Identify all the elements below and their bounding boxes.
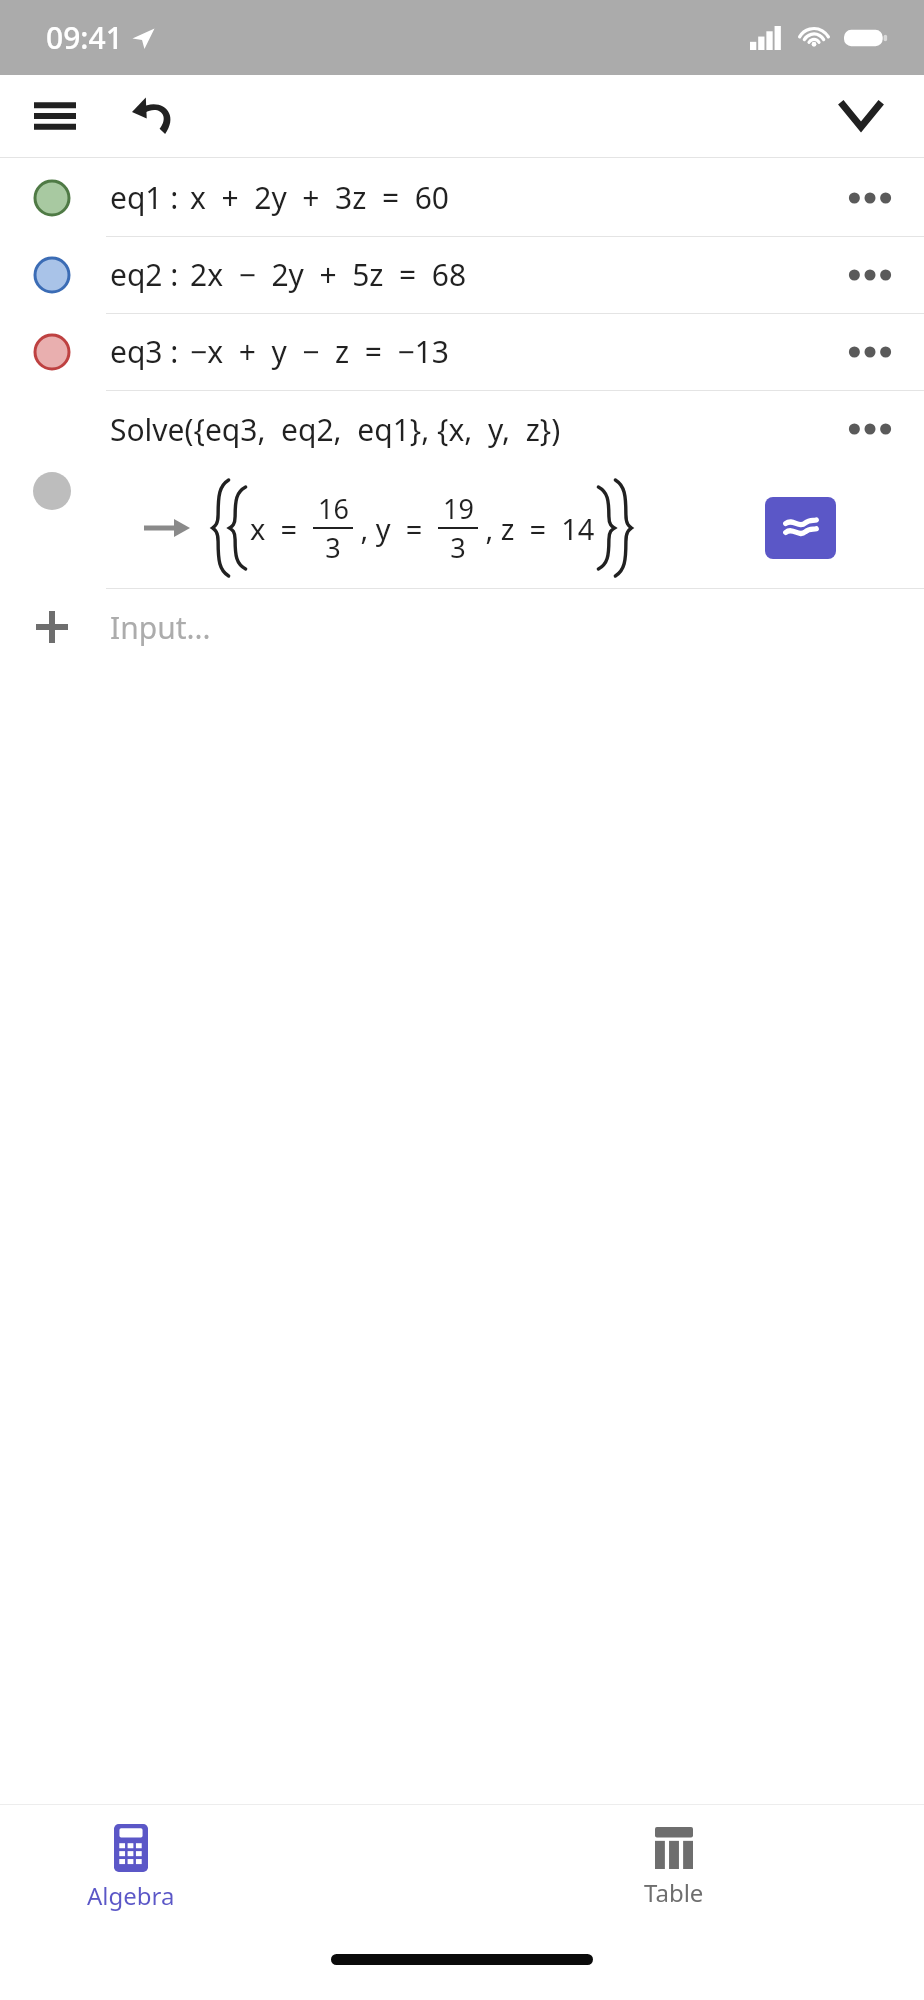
staticText: eq1 : bbox=[110, 177, 179, 218]
staticText: Solve({eq3, eq2, eq1}, {x, y, z}) bbox=[110, 409, 561, 450]
staticText: Algebra bbox=[87, 1879, 175, 1912]
button[interactable]: More options bbox=[842, 247, 898, 303]
button[interactable]: Approximate bbox=[765, 497, 836, 559]
button[interactable]: Table bbox=[644, 1827, 704, 1909]
staticText: eq2 : bbox=[110, 254, 179, 295]
button[interactable]: More options bbox=[842, 170, 898, 226]
button[interactable]: x = bbox=[0, 468, 924, 588]
staticText: 3 bbox=[450, 529, 466, 566]
button[interactable]: Algebra bbox=[87, 1824, 175, 1912]
button[interactable]: eq2 : bbox=[0, 236, 924, 313]
button[interactable]: Add input bbox=[0, 588, 924, 666]
staticText: −x + y − z = −13 bbox=[190, 331, 449, 372]
staticText: 2x − 2y + 5z = 68 bbox=[190, 254, 467, 295]
button[interactable]: Menu bbox=[22, 83, 88, 149]
staticText: Table bbox=[644, 1876, 704, 1909]
staticText: , y = bbox=[353, 509, 438, 548]
button[interactable]: eq1 : bbox=[0, 159, 924, 236]
staticText: eq3 : bbox=[110, 331, 179, 372]
staticText: x = bbox=[250, 509, 313, 548]
button[interactable]: Expand bbox=[828, 83, 894, 149]
staticText: 09:41 bbox=[46, 17, 123, 58]
button[interactable]: Add input bbox=[29, 604, 75, 650]
staticText: 19 bbox=[443, 490, 474, 527]
button[interactable]: More options bbox=[842, 324, 898, 380]
button[interactable]: Undo bbox=[122, 83, 188, 149]
staticText: x + 2y + 3z = 60 bbox=[190, 177, 449, 218]
staticText: Input... bbox=[110, 607, 211, 648]
staticText: 3 bbox=[325, 529, 341, 566]
button[interactable]: Solve({eq3, eq2, eq1}, {x, y, z}) bbox=[0, 390, 924, 468]
button[interactable]: More options bbox=[842, 401, 898, 457]
staticText: 16 bbox=[318, 490, 349, 527]
button[interactable]: eq3 : bbox=[0, 313, 924, 390]
staticText: , z = 14 bbox=[478, 509, 595, 548]
